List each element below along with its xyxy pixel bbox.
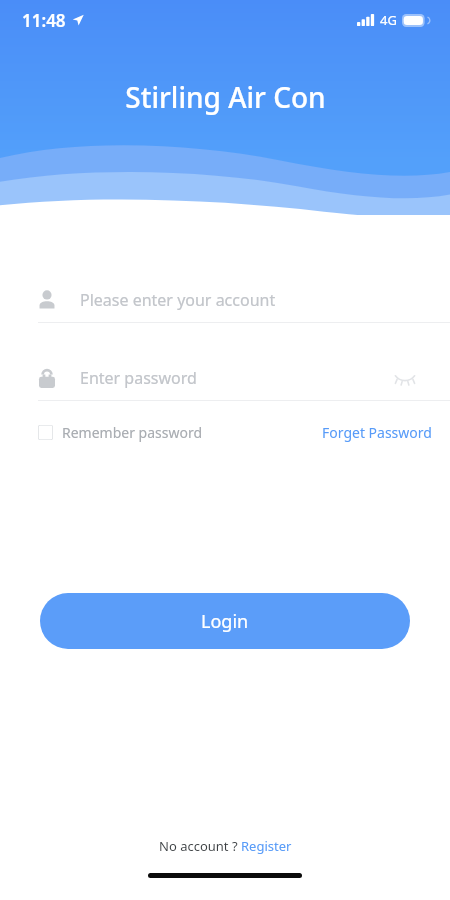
button[interactable]: Login <box>40 593 410 649</box>
staticText: Enter password <box>80 367 390 389</box>
button[interactable]: Forget Password <box>322 419 432 446</box>
button[interactable]: Please enter your account <box>38 278 450 322</box>
staticText: Stirling Air Con <box>125 78 326 116</box>
staticText: No account ? <box>159 837 241 855</box>
staticText: Forget Password <box>322 423 432 442</box>
staticText: Login <box>201 609 249 634</box>
staticText: Register <box>241 837 292 855</box>
staticText: Please enter your account <box>80 289 276 311</box>
button[interactable]: Show password <box>390 365 420 391</box>
button[interactable]: No account ? <box>159 837 292 855</box>
staticText: 4G <box>380 11 397 29</box>
button[interactable]: Remember password <box>38 419 203 446</box>
staticText: 11:48 <box>22 9 66 32</box>
staticText: Remember password <box>62 423 203 442</box>
